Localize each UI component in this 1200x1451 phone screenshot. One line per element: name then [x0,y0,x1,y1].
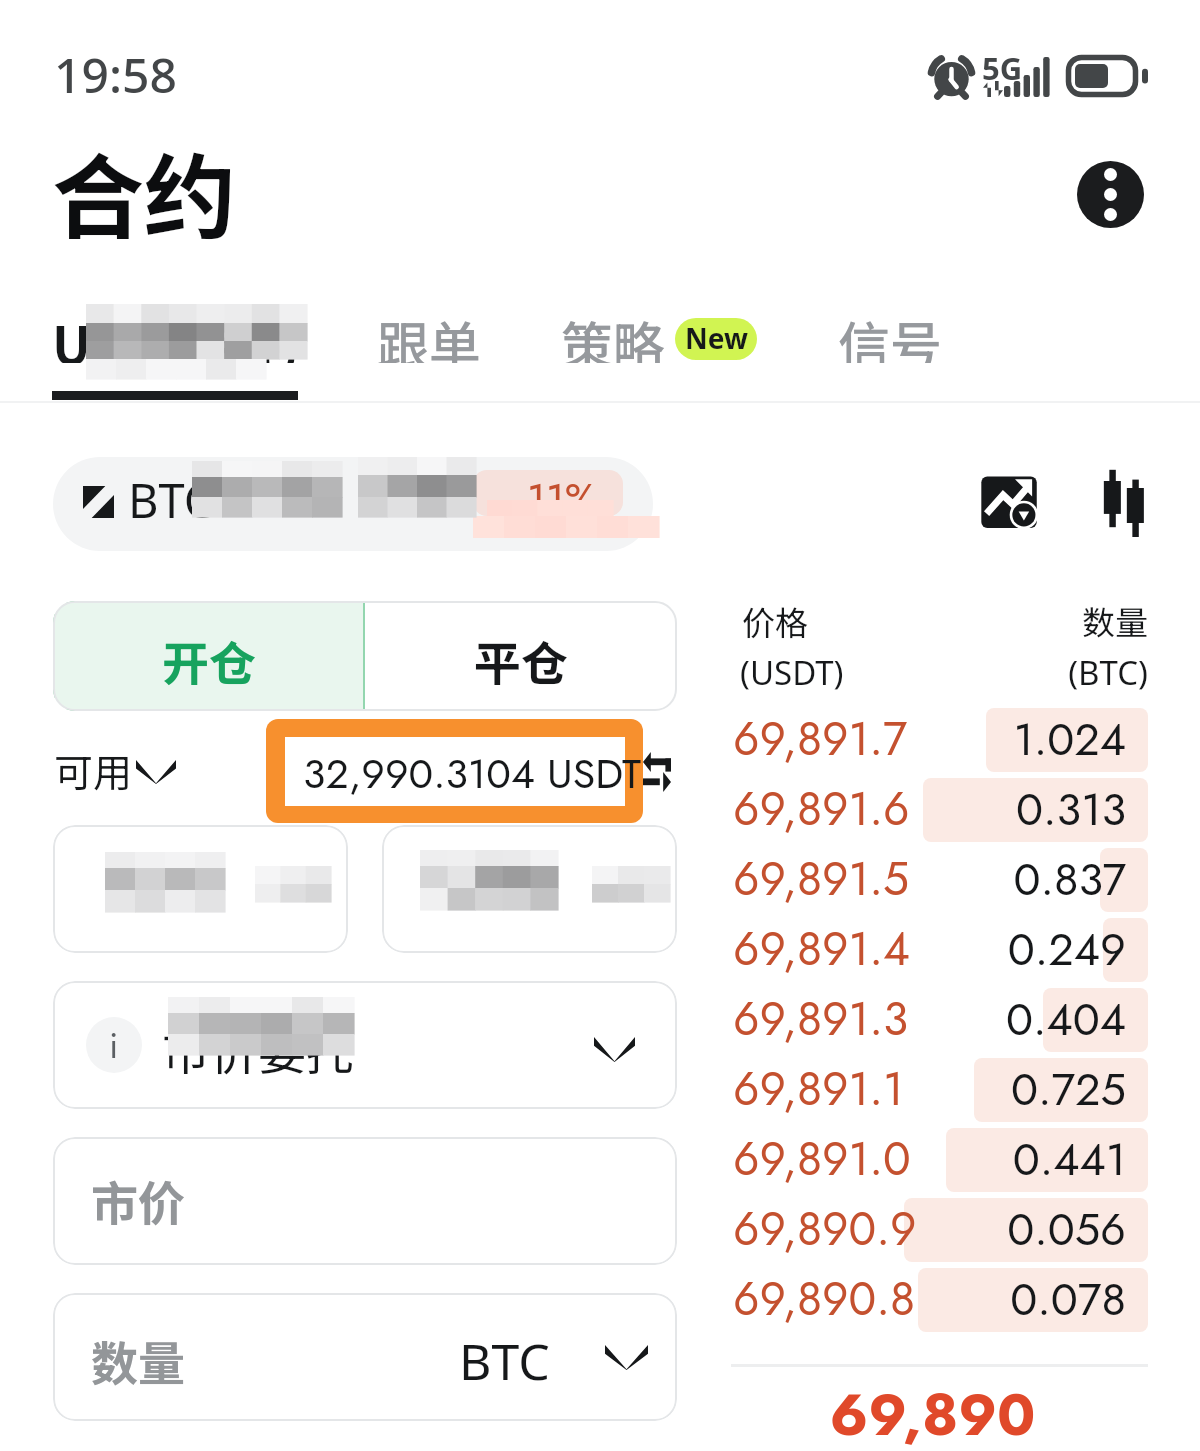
staticText: 0.837 [970,847,1126,912]
button[interactable]: Chart [980,470,1046,536]
staticText: 跟单 [377,305,482,363]
staticText: 69,890.8 [733,1266,916,1332]
button[interactable]: 策略 [561,311,666,369]
staticText: 69,890 [724,1373,1141,1451]
staticText: 数量 [1020,597,1148,645]
staticText: 可用 [54,742,133,798]
button[interactable]: New [675,318,757,360]
button[interactable]: U本位合约 [52,311,302,369]
button[interactable]: 数量 [53,1293,677,1421]
staticText: 价格 [742,597,808,645]
staticText: 5G [982,47,1023,89]
staticText: 市价 [91,1166,185,1234]
staticText: 0.249 [970,917,1126,982]
staticText: BTC [459,1327,550,1395]
staticText: i [109,1019,119,1071]
staticText: 市价委托 [162,1014,355,1084]
button[interactable]: i [53,981,677,1109]
staticText: 平仓 [474,626,568,694]
staticText: 32,990.3104 USDT [303,744,641,803]
staticText: 69,891.3 [733,986,909,1052]
staticText: 开仓 [162,626,256,694]
staticText: 11% [527,469,597,530]
staticText: (BTC) [1020,650,1148,695]
staticText: 69,891.1 [733,1056,904,1122]
staticText: 69,891.5 [733,846,909,912]
staticText: 69,890.9 [733,1196,917,1262]
button[interactable]: 跟单 [377,311,482,369]
button[interactable]: 信号 [838,311,943,369]
staticText: 数量 [91,1326,185,1394]
staticText: 0.056 [970,1197,1126,1262]
button[interactable] [382,825,677,953]
staticText: 合约 [52,124,237,257]
staticText: 0.441 [970,1127,1126,1192]
button[interactable]: 可用 [50,732,200,806]
staticText: 策略 [561,305,666,363]
button[interactable] [53,825,348,953]
staticText: 0.313 [970,777,1126,842]
button[interactable]: More options [1077,161,1144,228]
button[interactable]: BTC [53,457,653,551]
staticText: 1.024 [970,707,1126,772]
staticText: 0.078 [970,1267,1126,1332]
staticText: BTC [128,468,214,532]
staticText: 19:58 [54,42,177,107]
staticText: 69,891.4 [733,916,910,982]
staticText: 0.404 [970,987,1126,1052]
button[interactable]: 平仓 [365,601,677,711]
staticText: 69,891.7 [733,706,908,772]
staticText: 69,891.6 [733,776,910,842]
staticText: 69,891.0 [733,1126,911,1192]
staticText: U本位合约 [52,305,299,363]
staticText: (USDT) [740,650,844,695]
button[interactable]: 开仓 [53,601,365,711]
button[interactable]: 市价 [53,1137,677,1265]
button[interactable]: Switch unit [643,752,671,792]
button[interactable]: Depth chart [1102,467,1148,537]
staticText: 0.725 [970,1057,1126,1122]
staticText: New [685,319,748,357]
staticText: 信号 [838,305,943,363]
